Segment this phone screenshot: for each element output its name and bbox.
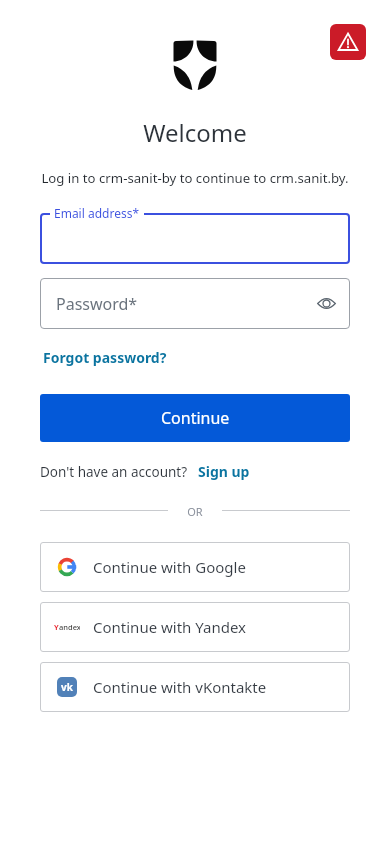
button[interactable]: Continue bbox=[40, 394, 350, 442]
button[interactable]: Y bbox=[40, 602, 350, 652]
staticText: Continue bbox=[161, 407, 230, 429]
staticText: Y bbox=[54, 622, 59, 632]
staticText: Sign up bbox=[198, 462, 250, 481]
button[interactable]: Continue with Google bbox=[40, 542, 350, 592]
staticText: Continue with Yandex bbox=[93, 617, 247, 637]
button[interactable]: Forgot password? bbox=[43, 348, 167, 367]
staticText: Don't have an account? bbox=[40, 463, 188, 481]
staticText: Welcome bbox=[0, 116, 390, 149]
staticText: Continue with vKontakte bbox=[93, 677, 267, 697]
button[interactable] bbox=[330, 24, 366, 60]
staticText: Email address* bbox=[54, 205, 140, 221]
button[interactable] bbox=[40, 213, 350, 264]
button[interactable]: Sign up bbox=[198, 462, 250, 481]
staticText: Continue with Google bbox=[93, 557, 246, 577]
staticText: andex bbox=[59, 622, 80, 632]
staticText: Log in to crm-sanit-by to continue to cr… bbox=[0, 169, 390, 187]
button[interactable]: vk bbox=[40, 662, 350, 712]
staticText: OR bbox=[0, 504, 390, 519]
staticText: vk bbox=[61, 680, 73, 694]
staticText: Forgot password? bbox=[43, 348, 167, 367]
staticText: Password* bbox=[56, 293, 138, 315]
button[interactable]: Password* bbox=[40, 278, 350, 329]
